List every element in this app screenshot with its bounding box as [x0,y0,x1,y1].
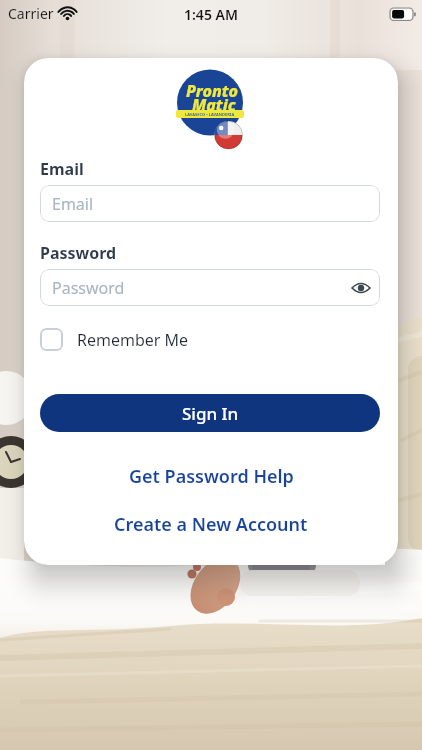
staticText: Email [52,193,94,215]
staticText: Create a New Account [114,512,308,537]
staticText: Carrier [8,4,54,23]
button[interactable]: Get Password Help [24,464,398,489]
button[interactable]: Email [40,185,380,222]
staticText: Remember Me [77,329,189,351]
staticText: LAVASECO • LAVANDERIA [185,112,235,117]
staticText: Password [52,277,125,299]
staticText: Matic [192,94,236,116]
button[interactable]: Remember Me [40,328,189,351]
staticText: Pronto [186,80,239,102]
staticText: Get Password Help [129,464,294,489]
staticText: 1:45 AM [184,5,238,24]
staticText: Password [40,242,117,264]
staticText: Sign In [182,402,239,425]
button[interactable]: Create a New Account [24,512,398,537]
button[interactable]: Sign In [40,394,380,432]
button[interactable]: Password [40,269,380,306]
staticText: Email [40,158,84,180]
